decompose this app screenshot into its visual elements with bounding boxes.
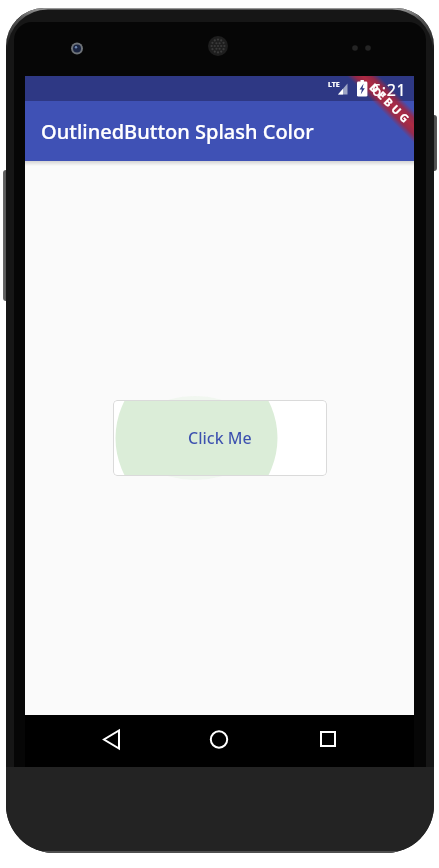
staticText: DEBUG xyxy=(367,80,414,128)
button[interactable] xyxy=(25,715,154,767)
button[interactable] xyxy=(154,715,284,767)
staticText: 6:21 xyxy=(372,79,407,101)
button[interactable] xyxy=(284,715,414,767)
staticText: LTE xyxy=(328,80,340,90)
staticText: OutlinedButton Splash Color xyxy=(41,118,314,145)
staticText: Click Me xyxy=(188,427,252,449)
button[interactable]: Click Me xyxy=(113,400,327,476)
